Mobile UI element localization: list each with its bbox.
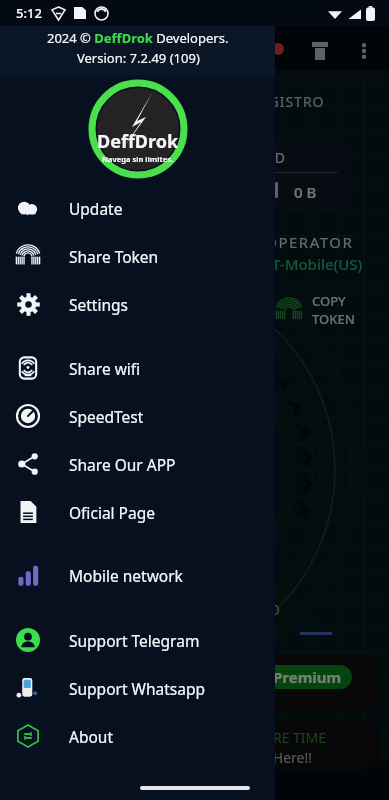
button[interactable]: SpeedTest xyxy=(0,392,275,440)
staticText: Mobile network xyxy=(69,565,183,586)
staticText: Version: 7.2.49 (109) xyxy=(77,49,200,67)
staticText: 2024 © DeffDrok Developers. xyxy=(47,29,229,47)
button[interactable]: Delete xyxy=(303,34,337,68)
button[interactable]: More options xyxy=(347,34,381,68)
staticText: 0 B xyxy=(294,182,317,202)
button[interactable]: Notifications xyxy=(255,34,289,68)
staticText: T-Mobile(US) xyxy=(272,254,363,274)
button[interactable]: Share Token xyxy=(0,232,275,280)
staticText: 5:12 xyxy=(16,4,42,22)
staticText: Share wifi xyxy=(69,358,141,379)
button[interactable]: Support Whatsapp xyxy=(0,664,275,712)
button[interactable]: Settings xyxy=(0,280,275,328)
staticText: About xyxy=(69,726,113,747)
staticText: Update xyxy=(69,198,123,219)
staticText: E OPERATOR xyxy=(250,232,354,252)
staticText: Share Token xyxy=(69,246,159,267)
staticText: Share Our APP xyxy=(69,454,176,475)
button[interactable]: Oficial Page xyxy=(0,488,275,536)
staticText: Premium xyxy=(273,667,342,687)
staticText: ED xyxy=(262,600,281,619)
staticText: Settings xyxy=(69,294,128,315)
button[interactable]: Mobile network xyxy=(0,551,275,599)
button[interactable]: Update xyxy=(0,184,275,232)
staticText: Oficial Page xyxy=(69,502,155,523)
button[interactable]: Share wifi xyxy=(0,344,275,392)
staticText: Support Whatsapp xyxy=(69,678,206,699)
staticText: DeffDrok xyxy=(97,129,179,154)
button[interactable]: Share Our APP xyxy=(0,440,275,488)
staticText: EIVED xyxy=(238,148,287,167)
staticText: ORE TIME xyxy=(262,728,327,747)
staticText: REGISTRO xyxy=(250,92,325,111)
button[interactable]: Support Telegram xyxy=(0,616,275,664)
staticText: SpeedTest xyxy=(69,406,144,427)
button[interactable]: About xyxy=(0,712,275,760)
staticText: ck Here!! xyxy=(255,748,313,767)
staticText: COPY TOKEN xyxy=(312,292,389,328)
staticText: Support Telegram xyxy=(69,630,200,651)
staticText: Navega sin límites. xyxy=(102,154,174,164)
